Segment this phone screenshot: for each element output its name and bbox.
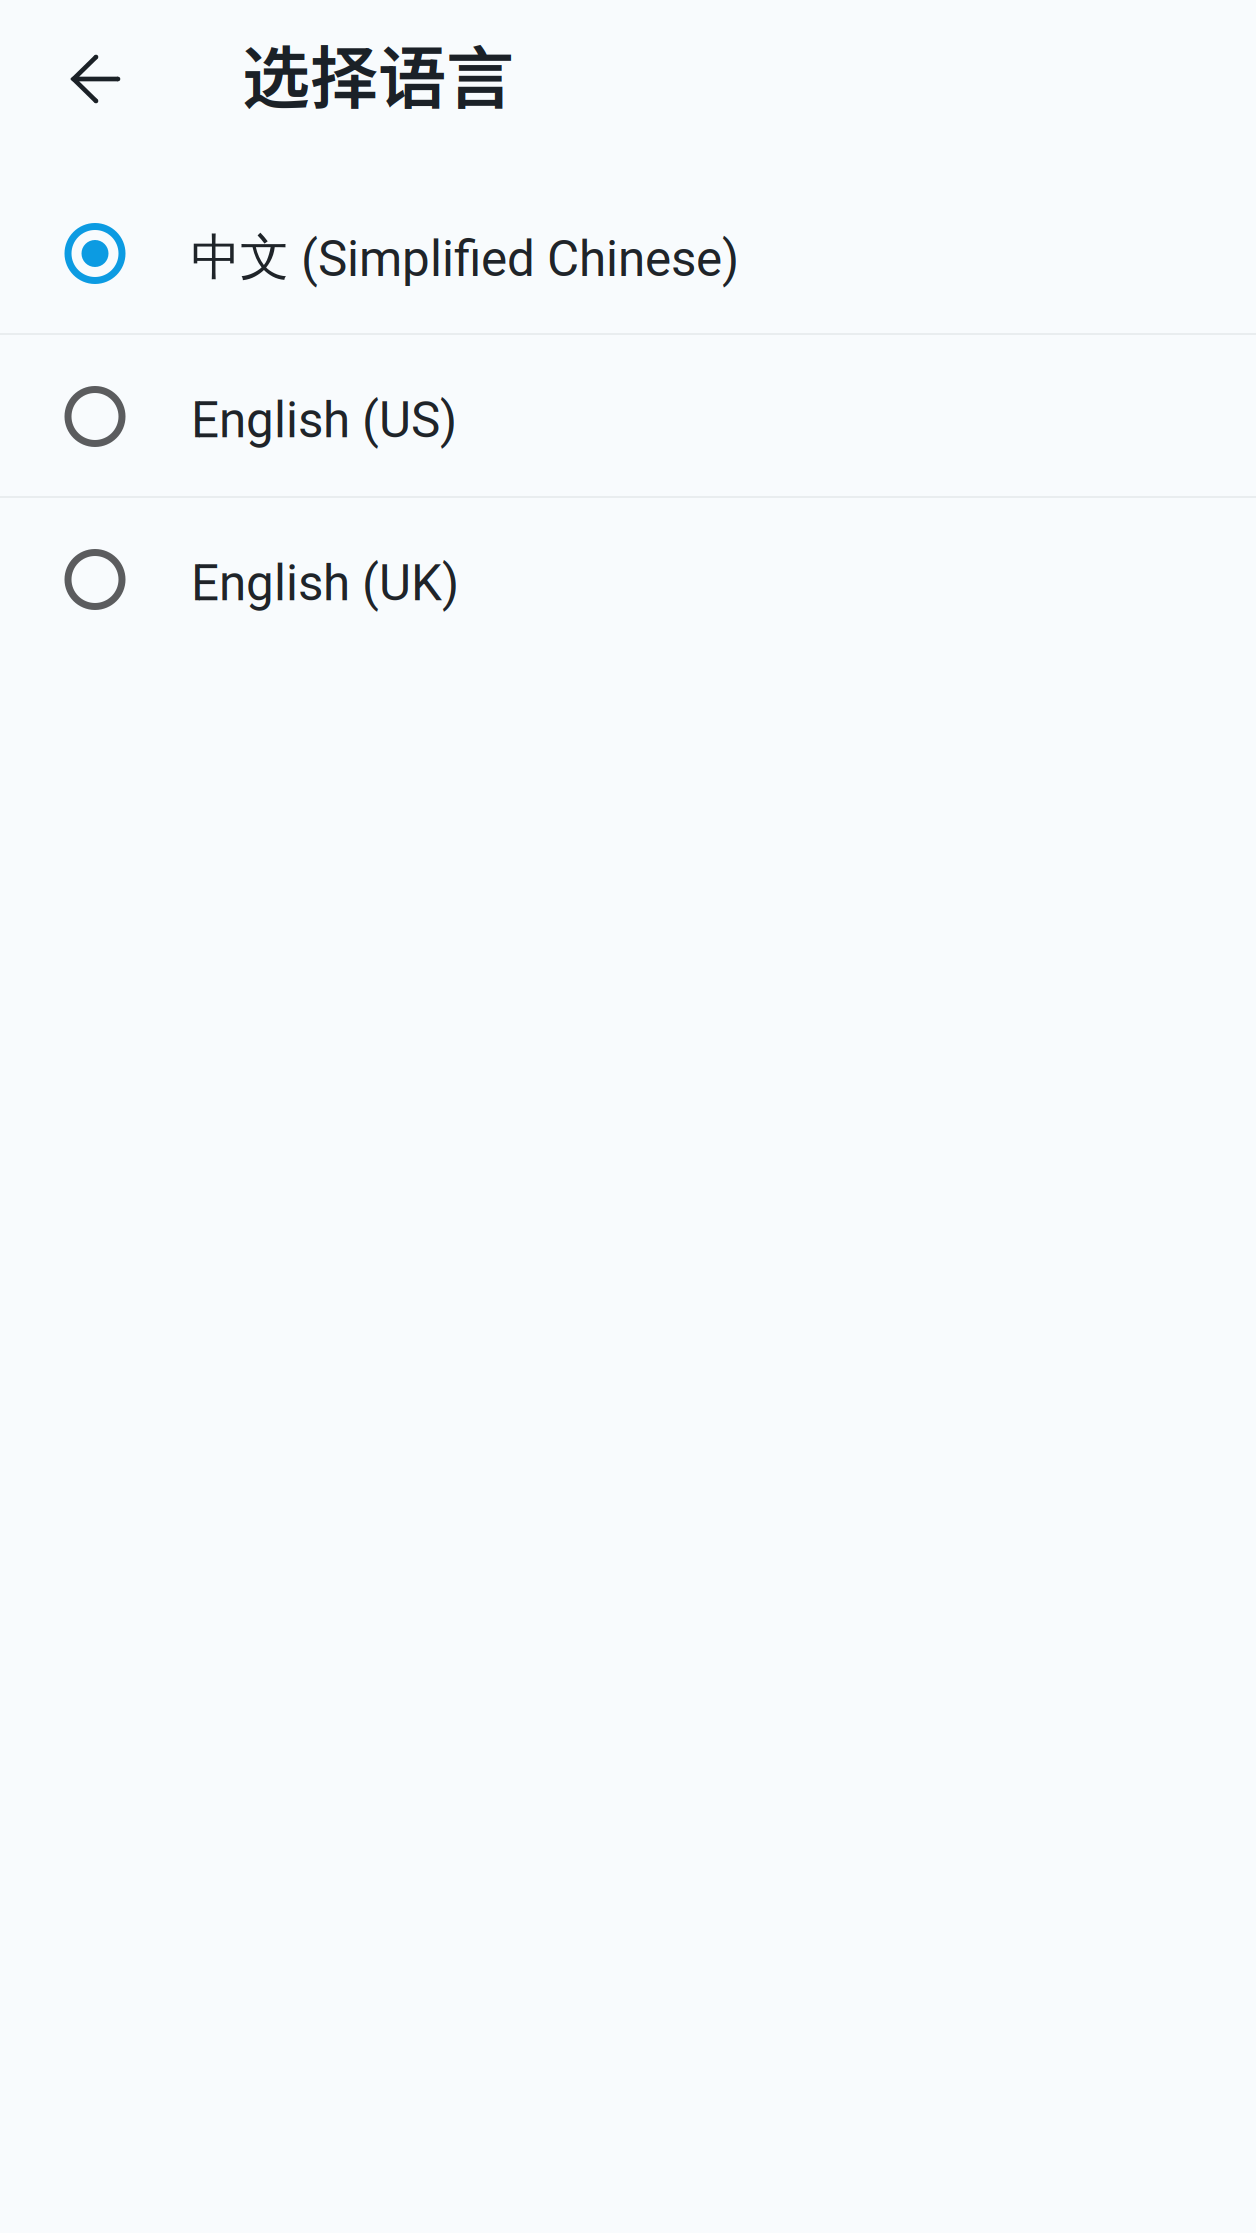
button[interactable]: English (UK)	[0, 496, 1256, 659]
staticText: 选择语言	[242, 24, 514, 122]
staticText: English (UK)	[191, 555, 459, 612]
staticText: 中文 (Simplified Chinese)	[191, 226, 739, 288]
button[interactable]: 中文 (Simplified Chinese)	[0, 170, 1256, 333]
staticText: English (US)	[191, 392, 457, 449]
button[interactable]: Back	[0, 0, 244, 170]
button[interactable]: English (US)	[0, 333, 1256, 496]
